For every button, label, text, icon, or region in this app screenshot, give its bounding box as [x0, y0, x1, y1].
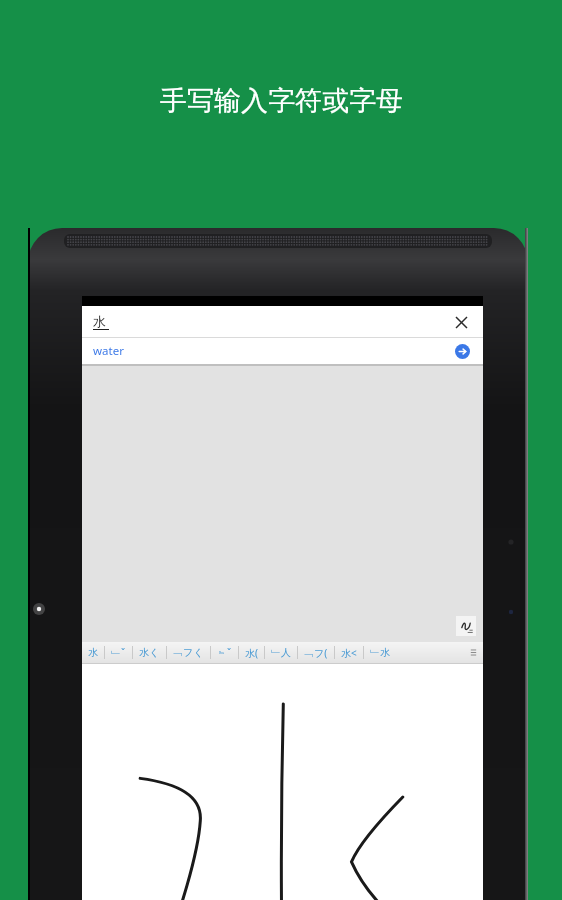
button[interactable]: Clear: [450, 311, 472, 333]
staticText: ﹂人: [271, 646, 291, 659]
button[interactable]: Handwriting settings: [456, 616, 476, 636]
button[interactable]: 水く: [133, 642, 166, 663]
staticText: 水: [93, 313, 106, 329]
button[interactable]: ﹁フく: [167, 642, 210, 663]
staticText: ﹁フ(: [304, 646, 328, 660]
button[interactable]: 水: [82, 642, 104, 663]
staticText: 水<: [341, 646, 357, 660]
staticText: 水(: [245, 646, 258, 660]
button[interactable]: Handwriting input area: [82, 664, 483, 900]
staticText: 手写输入字符或字母: [160, 84, 403, 118]
button[interactable]: ﹁フ(: [298, 642, 334, 663]
staticText: ﹄ˇ: [217, 646, 232, 660]
button[interactable]: More candidates: [463, 642, 483, 663]
button[interactable]: ﹄ˇ: [211, 642, 238, 663]
staticText: ﹁フく: [173, 646, 204, 659]
staticText: 水: [88, 646, 98, 659]
staticText: water: [93, 343, 124, 359]
button[interactable]: 水(: [239, 642, 264, 663]
button[interactable]: water: [82, 338, 483, 364]
staticText: 水く: [139, 646, 160, 659]
button[interactable]: 水: [82, 306, 483, 337]
button[interactable]: ﹂ˇ: [105, 642, 132, 663]
button[interactable]: 水<: [335, 642, 363, 663]
button[interactable]: ﹂人: [265, 642, 297, 663]
staticText: ﹂ˇ: [111, 646, 126, 660]
button[interactable]: ﹂水: [364, 642, 396, 663]
button[interactable]: Go: [452, 341, 472, 361]
staticText: ﹂水: [370, 646, 390, 659]
